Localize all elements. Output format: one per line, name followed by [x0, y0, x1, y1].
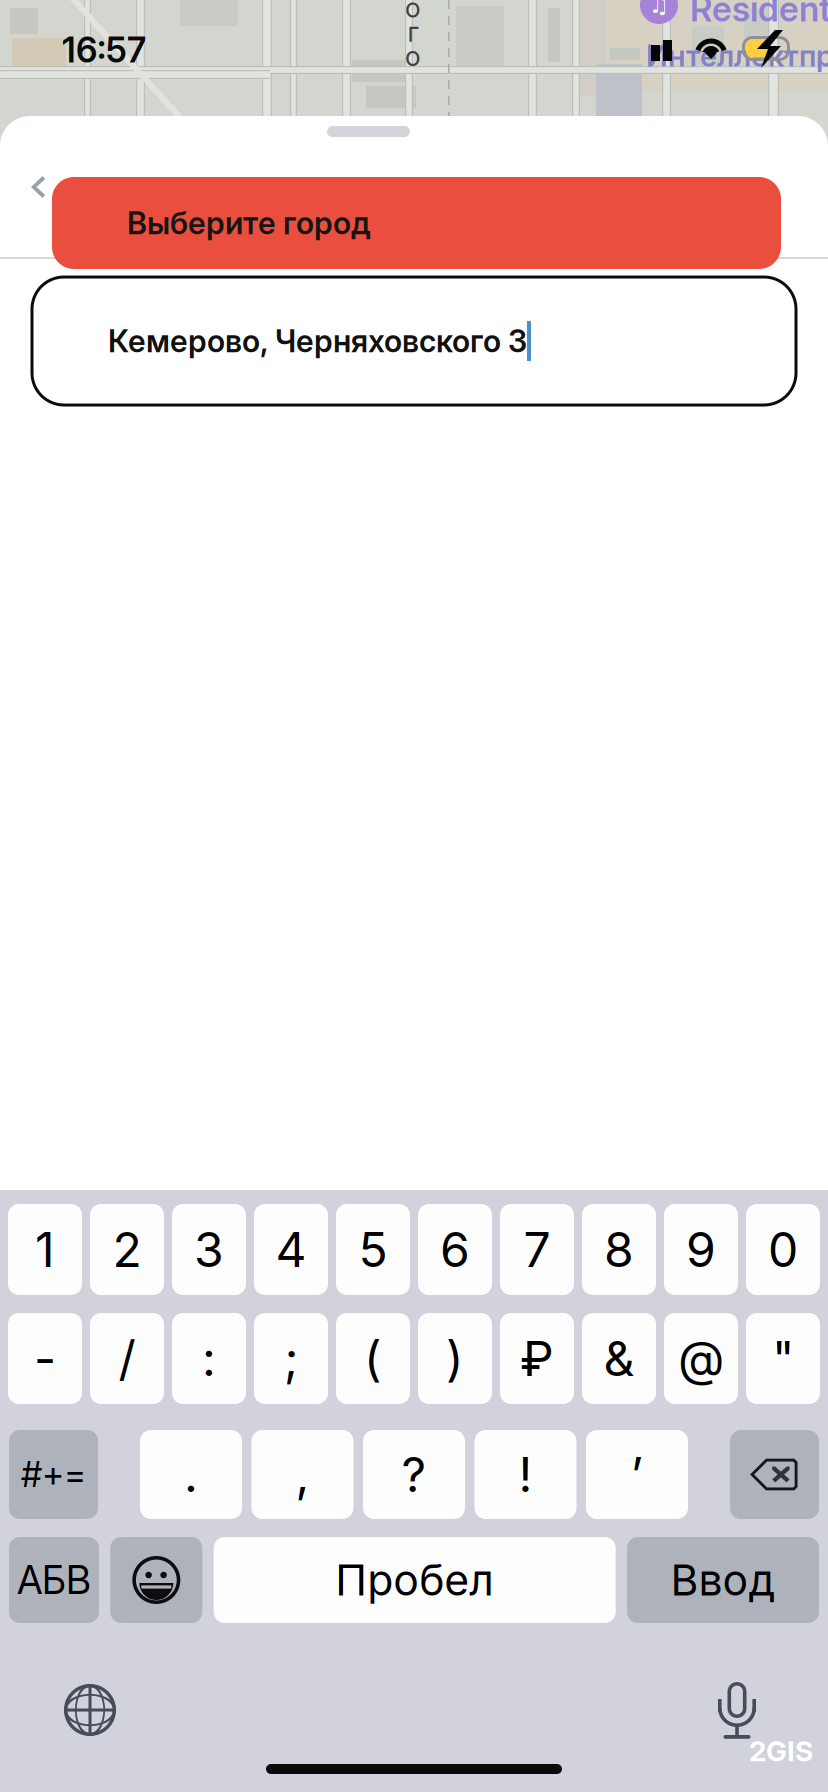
- button[interactable]: 6: [418, 1204, 492, 1295]
- button[interactable]: (: [336, 1313, 410, 1404]
- staticText: о: [405, 40, 421, 72]
- button[interactable]: ?: [363, 1430, 465, 1519]
- button[interactable]: Выберите город: [52, 177, 781, 269]
- button[interactable]: ,: [251, 1430, 353, 1519]
- staticText: @: [678, 1329, 724, 1388]
- staticText: ♫: [649, 0, 669, 18]
- button[interactable]: .: [140, 1430, 242, 1519]
- staticText: .: [184, 1445, 198, 1504]
- staticText: 3: [194, 1220, 224, 1279]
- staticText: #+=: [21, 1453, 86, 1495]
- staticText: 16:57: [62, 29, 146, 71]
- button[interactable]: АБВ: [9, 1537, 99, 1623]
- button[interactable]: 1: [8, 1204, 82, 1295]
- staticText: 5: [358, 1220, 387, 1279]
- button[interactable]: 8: [582, 1204, 656, 1295]
- button[interactable]: -: [8, 1313, 82, 1404]
- button[interactable]: Dictation: [718, 1682, 756, 1739]
- staticText: Интеллектправо: [646, 38, 828, 73]
- staticText: (: [364, 1329, 382, 1388]
- staticText: Пробел: [335, 1554, 494, 1606]
- button[interactable]: /: [90, 1313, 164, 1404]
- button[interactable]: &: [582, 1313, 656, 1404]
- button[interactable]: ’: [586, 1430, 688, 1519]
- staticText: 1: [35, 1220, 55, 1279]
- button[interactable]: Back: [13, 156, 62, 218]
- button[interactable]: ": [746, 1313, 820, 1404]
- staticText: :: [202, 1329, 216, 1388]
- button[interactable]: #+=: [9, 1430, 98, 1519]
- button[interactable]: Next keyboard: [64, 1684, 116, 1736]
- staticText: 8: [604, 1220, 634, 1279]
- staticText: Resident: [690, 0, 828, 30]
- staticText: Ввод: [670, 1554, 775, 1606]
- staticText: ": [772, 1329, 794, 1388]
- staticText: АБВ: [17, 1557, 91, 1603]
- button[interactable]: !: [474, 1430, 576, 1519]
- button[interactable]: 4: [254, 1204, 328, 1295]
- button[interactable]: 0: [746, 1204, 820, 1295]
- button[interactable]: ;: [254, 1313, 328, 1404]
- button[interactable]: Пробел: [214, 1537, 616, 1623]
- staticText: г: [407, 16, 418, 48]
- button[interactable]: Ввод: [627, 1537, 819, 1623]
- staticText: 0: [768, 1220, 798, 1279]
- button[interactable]: ): [418, 1313, 492, 1404]
- button[interactable]: 2: [90, 1204, 164, 1295]
- staticText: -: [34, 1329, 56, 1388]
- staticText: Кемерово, Черняховского 3: [108, 322, 527, 359]
- staticText: &: [603, 1329, 634, 1388]
- staticText: ’: [630, 1445, 643, 1504]
- staticText: ,: [295, 1445, 309, 1504]
- staticText: ?: [401, 1445, 426, 1504]
- staticText: 7: [523, 1220, 550, 1279]
- staticText: 4: [275, 1220, 306, 1279]
- button[interactable]: Emoji: [110, 1537, 202, 1623]
- button[interactable]: Delete: [730, 1430, 819, 1519]
- staticText: 2GIS: [749, 1734, 813, 1768]
- staticText: 9: [686, 1220, 716, 1279]
- button[interactable]: :: [172, 1313, 246, 1404]
- button[interactable]: 7: [500, 1204, 574, 1295]
- button[interactable]: Кемерово, Черняховского 3: [32, 277, 796, 405]
- button[interactable]: 5: [336, 1204, 410, 1295]
- button[interactable]: @: [664, 1313, 738, 1404]
- staticText: 6: [440, 1220, 470, 1279]
- button[interactable]: ₽: [500, 1313, 574, 1404]
- button[interactable]: 3: [172, 1204, 246, 1295]
- button[interactable]: 9: [664, 1204, 738, 1295]
- staticText: 2: [112, 1220, 141, 1279]
- staticText: ): [446, 1329, 464, 1388]
- staticText: о: [405, 0, 421, 24]
- staticText: ;: [284, 1329, 298, 1388]
- staticText: ₽: [520, 1329, 554, 1388]
- staticText: Выберите город: [127, 204, 370, 241]
- staticText: !: [518, 1445, 532, 1504]
- staticText: /: [118, 1329, 135, 1388]
